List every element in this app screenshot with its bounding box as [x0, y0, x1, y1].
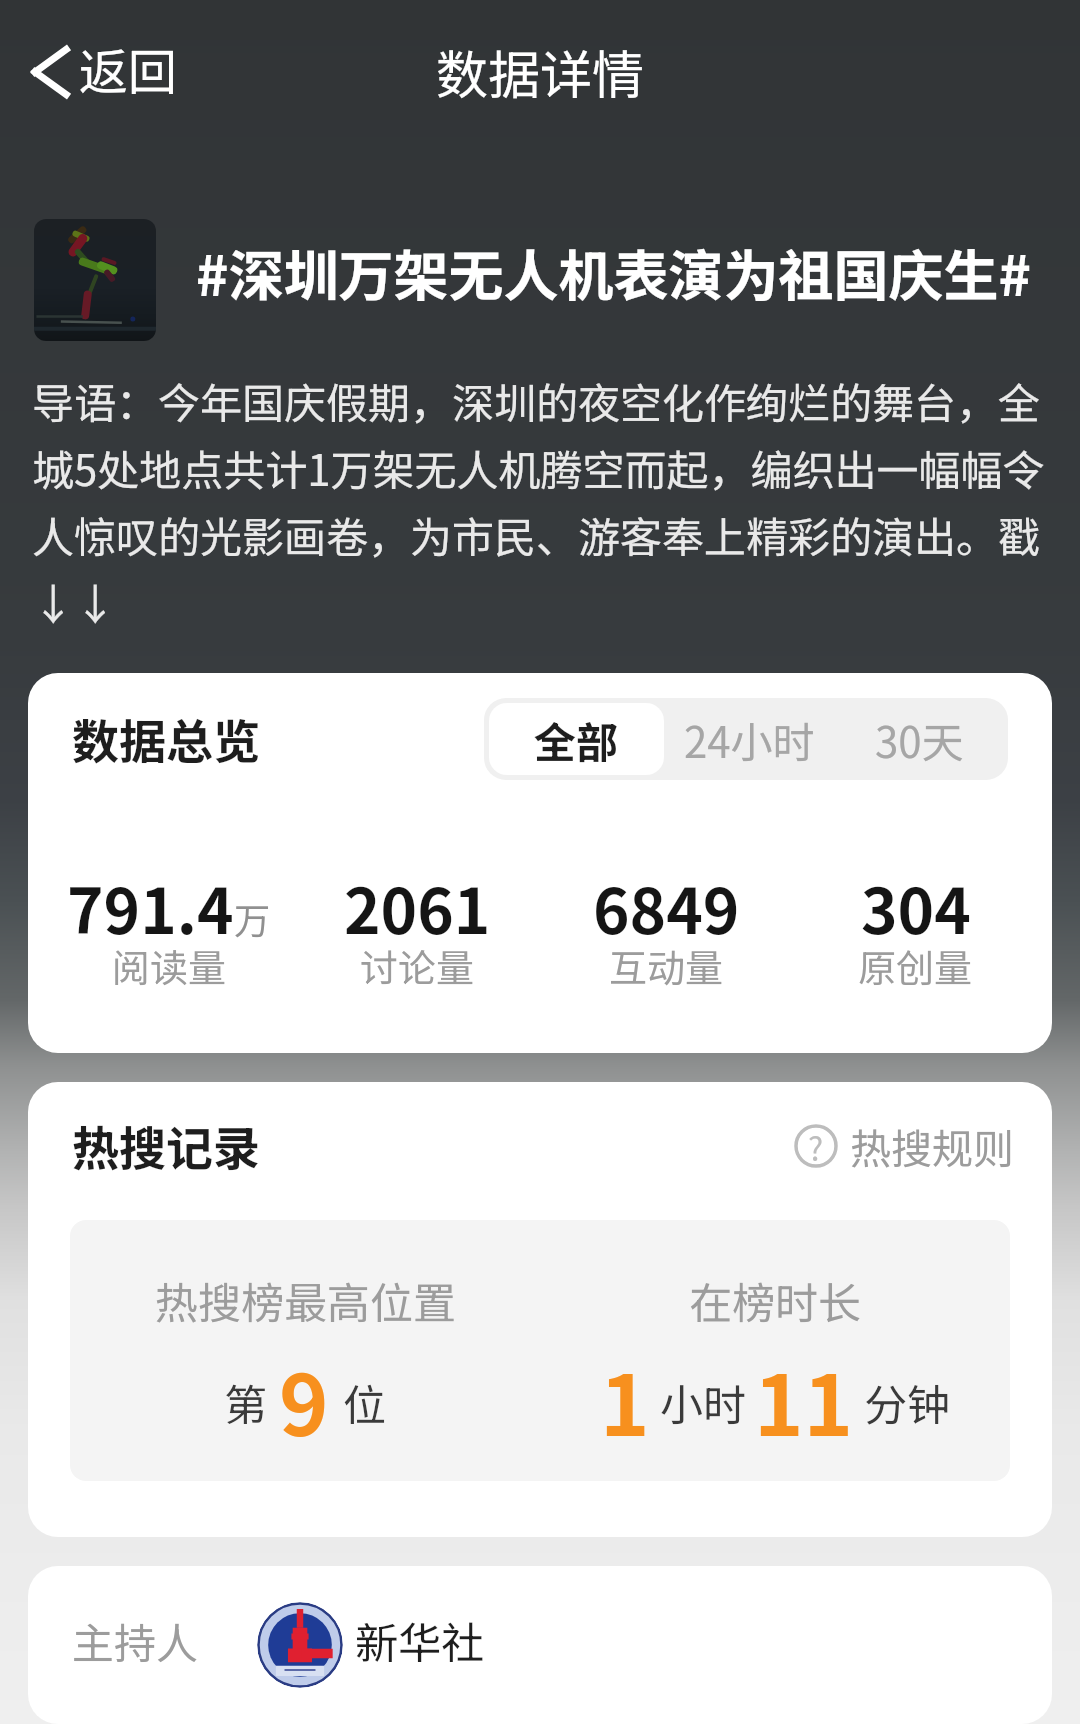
staticText: 主持人: [72, 1610, 199, 1671]
staticText: ↓↓: [32, 571, 117, 638]
staticText: 新华社: [355, 1609, 484, 1671]
staticText: 在榜时长: [689, 1269, 861, 1331]
staticText: 讨论量: [360, 938, 475, 993]
staticText: 数据详情: [436, 34, 645, 109]
button[interactable]: #深圳万架无人机表演为祖国庆生#: [0, 218, 1080, 342]
staticText: 原创量: [858, 938, 973, 993]
staticText: 11: [754, 1339, 854, 1461]
staticText: ?: [808, 1124, 824, 1168]
staticText: 互动量: [609, 938, 724, 993]
staticText: 人惊叹的光影画卷，为市民、游客奉上精彩的演出。戳: [32, 504, 1041, 571]
staticText: 第: [224, 1371, 267, 1433]
button[interactable]: 30天: [835, 703, 1003, 775]
staticText: 24小时: [684, 709, 815, 770]
staticText: 304: [861, 862, 971, 952]
staticText: 阅读量: [112, 938, 227, 993]
staticText: 热搜规则: [850, 1116, 1014, 1175]
button[interactable]: 主持人: [28, 1566, 1052, 1724]
button[interactable]: 全部: [489, 703, 664, 775]
button[interactable]: Back: [22, 24, 188, 119]
staticText: 9: [279, 1339, 329, 1461]
button[interactable]: 热搜规则 Hot search rules: [794, 1133, 1014, 1192]
staticText: 导语：今年国庆假期，深圳的夜空化作绚烂的舞台，全: [32, 370, 1041, 437]
button[interactable]: 数据总览: [28, 673, 1052, 1053]
staticText: 城5处地点共计1万架无人机腾空而起，编织出一幅幅令: [32, 437, 1045, 504]
button[interactable]: 24小时: [664, 703, 835, 775]
button[interactable]: 热搜记录: [28, 1082, 1052, 1537]
staticText: 返回: [79, 33, 178, 104]
staticText: 2061: [344, 862, 491, 952]
staticText: 数据总览: [72, 704, 260, 772]
staticText: 全部: [534, 709, 619, 770]
staticText: 791.4: [67, 862, 234, 952]
staticText: 热搜榜最高位置: [155, 1269, 456, 1331]
staticText: 1: [600, 1339, 650, 1461]
staticText: 万: [234, 892, 271, 944]
staticText: 30天: [875, 709, 964, 770]
staticText: 热搜记录: [72, 1111, 260, 1179]
staticText: #深圳万架无人机表演为祖国庆生#: [196, 232, 1031, 312]
staticText: 小时: [660, 1371, 746, 1433]
staticText: 位: [343, 1371, 386, 1433]
staticText: 6849: [593, 862, 740, 952]
staticText: 分钟: [864, 1371, 950, 1433]
